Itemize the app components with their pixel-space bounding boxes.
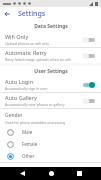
staticText: User Settings: [34, 68, 68, 75]
button[interactable]: Back: [15, 167, 29, 180]
button[interactable]: Auto Gallery: [0, 93, 101, 108]
staticText: Auto Gallery: [5, 94, 37, 101]
button[interactable]: Wifi Only: [0, 32, 101, 47]
staticText: Male: [22, 129, 33, 135]
staticText: Automatically save photos to gallery: [5, 102, 65, 107]
staticText: Used for photo metadata processing: [5, 120, 66, 125]
staticText: Data Settings: [34, 23, 68, 30]
staticText: Auto Login: [5, 78, 34, 85]
staticText: Female: [22, 141, 38, 147]
staticText: Upload photos on wifi only: [5, 41, 49, 46]
staticText: Automatic Retry: [5, 49, 47, 56]
staticText: Retry failed image uploads when on wifi: [5, 57, 71, 62]
button[interactable]: Female: [0, 138, 101, 150]
button[interactable]: Back: [0, 7, 14, 21]
staticText: Other: [22, 153, 35, 159]
staticText: Wifi Only: [5, 33, 29, 40]
button[interactable]: Other: [0, 150, 101, 162]
button[interactable]: Male: [0, 126, 101, 138]
staticText: Gender: [5, 112, 23, 119]
button[interactable]: Auto Login: [0, 77, 101, 92]
button[interactable]: Recents: [72, 167, 86, 180]
button[interactable]: Automatic Retry: [0, 48, 101, 63]
staticText: Settings: [18, 9, 46, 19]
staticText: Automatically sign in user: [5, 86, 48, 91]
button[interactable]: Home: [44, 167, 58, 180]
